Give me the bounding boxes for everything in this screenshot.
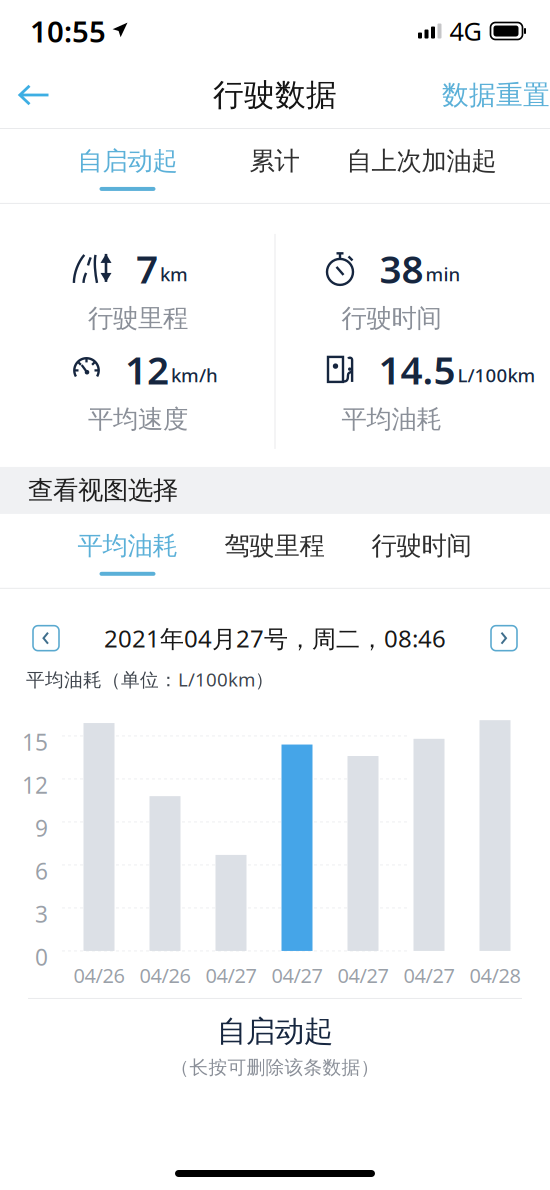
staticText: min — [425, 261, 460, 286]
staticText: 04/27 — [205, 962, 256, 988]
staticText: 04/26 — [73, 962, 124, 988]
staticText: 4G — [449, 14, 481, 48]
staticText: km — [160, 261, 188, 286]
staticText: 10:55 — [30, 11, 106, 50]
staticText: 查看视图选择 — [28, 474, 178, 506]
button[interactable]: 行驶时间 — [348, 514, 495, 588]
staticText: km/h — [171, 362, 218, 387]
staticText: 累计 — [249, 145, 299, 177]
staticText: 驾驶里程 — [224, 530, 324, 562]
button[interactable]: 数据重置 — [426, 64, 550, 126]
staticText: L/100km — [457, 362, 535, 387]
staticText: （长按可删除该条数据） — [170, 1056, 379, 1079]
button[interactable]: 驾驶里程 — [201, 514, 348, 588]
staticText: 04/28 — [469, 962, 520, 988]
staticText: 12 — [125, 344, 169, 395]
staticText: 平均油耗 — [341, 403, 441, 435]
staticText: 平均速度 — [88, 403, 188, 435]
staticText: 数据重置 — [442, 78, 550, 112]
staticText: 14.5 — [378, 344, 455, 395]
button[interactable]: 平均油耗 — [54, 514, 201, 588]
button[interactable]: 下一天 — [491, 626, 517, 651]
staticText: 3 — [35, 899, 48, 929]
button[interactable]: 上一天 — [33, 626, 59, 651]
staticText: 38 — [379, 243, 423, 294]
staticText: 自启动起 — [217, 1013, 333, 1050]
staticText: 自上次加油起 — [346, 145, 496, 177]
staticText: 行驶时间 — [371, 530, 471, 562]
staticText: 6 — [35, 856, 48, 886]
staticText: 04/26 — [139, 962, 190, 988]
staticText: 行驶时间 — [341, 302, 441, 334]
staticText: 04/27 — [403, 962, 454, 988]
staticText: 平均油耗（单位：L/100km） — [26, 666, 274, 692]
staticText: 平均油耗 — [77, 530, 177, 562]
button[interactable]: 自启动起 — [54, 129, 201, 203]
staticText: 04/27 — [271, 962, 322, 988]
staticText: 行驶里程 — [88, 302, 188, 334]
staticText: 0 — [35, 942, 48, 972]
button[interactable]: 自上次加油起 — [348, 129, 495, 203]
staticText: 7 — [136, 243, 158, 294]
button[interactable]: 返回 — [0, 70, 66, 120]
staticText: 15 — [22, 727, 48, 757]
staticText: 04/27 — [337, 962, 388, 988]
staticText: 行驶数据 — [213, 76, 337, 114]
staticText: 自启动起 — [77, 145, 177, 177]
staticText: 2021年04月27号，周二，08:46 — [104, 622, 446, 654]
staticText: 12 — [22, 770, 48, 800]
staticText: 9 — [35, 813, 48, 843]
button[interactable]: 累计 — [201, 129, 348, 203]
